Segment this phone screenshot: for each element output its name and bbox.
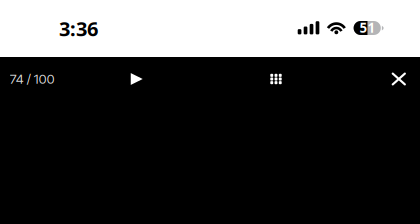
staticText: 3:36: [59, 15, 98, 42]
staticText: 74 / 100: [10, 71, 55, 87]
button[interactable]: Play: [114, 57, 158, 101]
button[interactable]: Close: [377, 57, 420, 101]
staticText: 51: [359, 19, 375, 36]
button[interactable]: Slide overview: [254, 57, 298, 101]
